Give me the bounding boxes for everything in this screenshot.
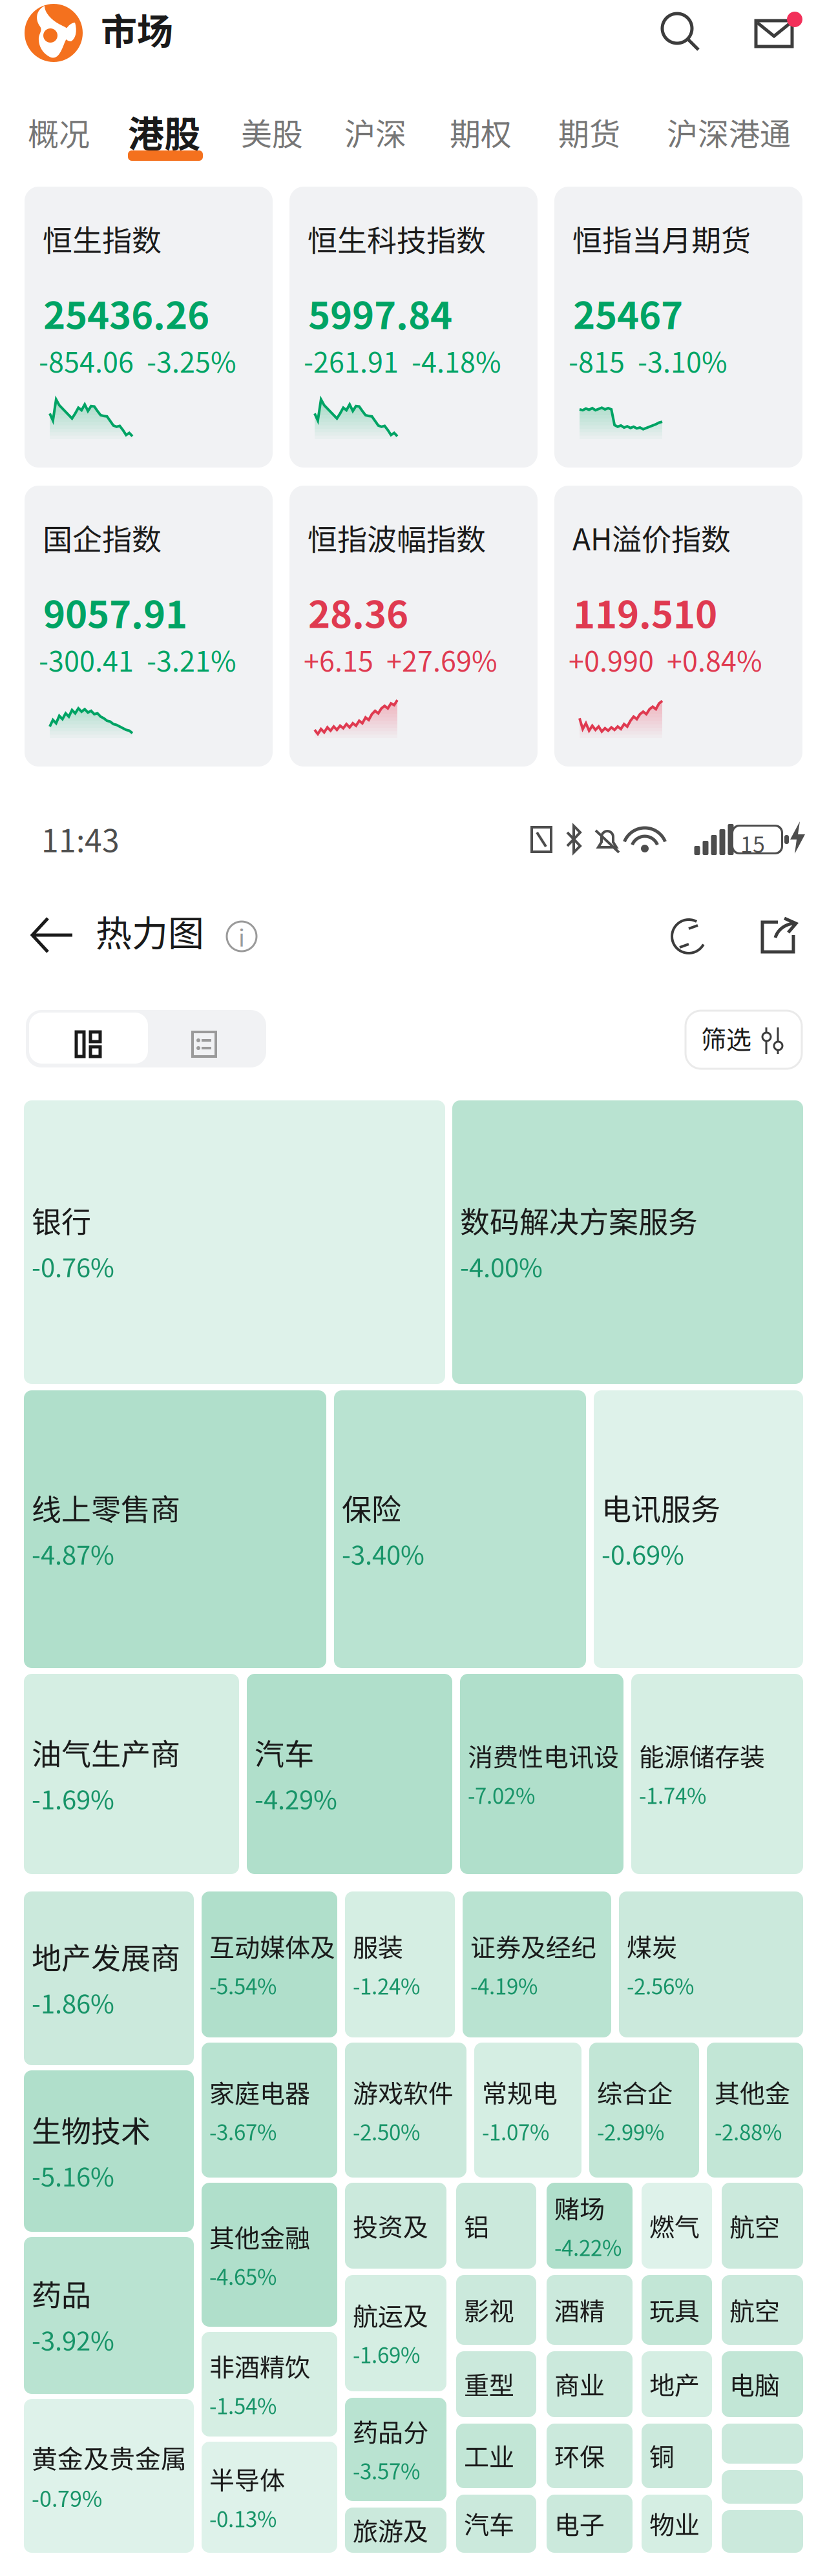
button[interactable]: 国企指数 [25,486,273,767]
staticText: 银行 [32,1199,91,1242]
button[interactable]: 非酒精饮 [202,2332,337,2437]
staticText: -0.13% [209,2503,277,2533]
staticText: -854.06 -3.25% [39,340,236,381]
staticText: 物业 [649,2505,700,2541]
button[interactable]: 服装 [345,1891,455,2037]
button[interactable]: 地产 [642,2351,712,2417]
button[interactable]: 煤炭 [619,1891,803,2037]
button[interactable]: 消费性电讯设 [460,1674,623,1874]
button[interactable]: 药品分 [345,2398,446,2501]
button[interactable]: 数码解决方案服务 [452,1100,803,1384]
button[interactable]: 燃气 [642,2183,712,2269]
button[interactable]: 航空 [722,2183,803,2269]
staticText: -1.74% [639,1779,706,1810]
button[interactable]: 生物技术 [24,2070,194,2232]
button[interactable]: 综合企 [589,2043,699,2178]
button[interactable]: Grid view [29,1013,148,1064]
button[interactable]: Messages [751,12,801,54]
staticText: 9057.91 [43,585,187,639]
button[interactable]: List view [149,1013,264,1064]
button[interactable]: 铜 [642,2424,712,2488]
staticText: 地产发展商 [32,1935,180,1978]
button[interactable]: 互动媒体及 [202,1891,337,2037]
button[interactable]: 玩具 [642,2275,712,2345]
button[interactable]: Search [660,12,703,54]
button[interactable]: Refresh [669,917,708,956]
button[interactable]: 其他金融 [202,2183,337,2327]
staticText: -3.57% [353,2455,420,2486]
button[interactable]: 恒指波幅指数 [289,486,538,767]
button[interactable]: Share [759,917,800,956]
staticText: 119.510 [573,585,717,639]
button[interactable]: 铝 [456,2183,536,2269]
button[interactable]: 美股 [232,98,316,169]
staticText: 地产 [649,2365,700,2402]
button[interactable]: 筛选 [686,1011,802,1069]
button[interactable]: Back [28,912,78,958]
button[interactable]: 航空 [722,2275,803,2345]
button[interactable]: 影视 [456,2275,536,2345]
staticText: -4.65% [209,2260,277,2291]
button[interactable]: 常规电 [474,2043,581,2178]
button[interactable]: 黄金及贵金属 [24,2399,194,2553]
button[interactable]: 地产发展商 [24,1891,194,2065]
button[interactable]: 能源储存装 [631,1674,803,1874]
button[interactable] [722,2424,803,2464]
button[interactable]: 期货 [549,98,633,169]
staticText: 汽车 [255,1731,314,1774]
button[interactable]: 赌场 [547,2183,633,2269]
button[interactable]: 线上零售商 [24,1390,326,1668]
button[interactable]: 期权 [441,98,525,169]
button[interactable]: 港股 [119,98,216,169]
button[interactable]: 其他金 [707,2043,803,2178]
button[interactable]: 汽车 [456,2495,536,2553]
button[interactable]: 商业 [547,2351,633,2417]
button[interactable]: 汽车 [247,1674,452,1874]
button[interactable]: 沪深港通 [658,98,810,169]
button[interactable]: 恒生指数 [25,187,273,468]
button[interactable]: 电子 [547,2495,633,2553]
staticText: 国企指数 [43,516,162,559]
button[interactable]: 航运及 [345,2275,446,2391]
staticText: -2.99% [597,2116,664,2147]
button[interactable] [722,2510,803,2553]
button[interactable]: 旅游及 [345,2508,446,2553]
staticText: -1.69% [32,1779,114,1817]
button[interactable]: AH溢价指数 [554,486,802,767]
staticText: 铜 [649,2437,675,2474]
staticText: 电讯服务 [602,1486,720,1529]
staticText: 互动媒体及 [209,1928,335,1964]
button[interactable] [722,2470,803,2504]
button[interactable]: 半导体 [202,2442,337,2553]
button[interactable]: 电讯服务 [594,1390,803,1668]
button[interactable]: 投资及 [345,2183,446,2269]
button[interactable]: 银行 [24,1100,445,1384]
button[interactable]: 家庭电器 [202,2043,337,2178]
button[interactable]: 证券及经纪 [463,1891,611,2037]
button[interactable]: 工业 [456,2424,536,2488]
staticText: 油气生产商 [32,1731,180,1774]
button[interactable]: 保险 [334,1390,586,1668]
button[interactable]: 环保 [547,2424,633,2488]
button[interactable]: 游戏软件 [345,2043,466,2178]
button[interactable]: 药品 [24,2237,194,2394]
button[interactable]: 油气生产商 [24,1674,239,1874]
staticText: 影视 [464,2291,514,2328]
staticText: 港股 [128,105,200,158]
button[interactable]: 重型 [456,2351,536,2417]
button[interactable]: 沪深 [335,98,419,169]
button[interactable]: 概况 [19,98,103,169]
button[interactable]: 电脑 [722,2351,803,2417]
staticText: 半导体 [209,2460,285,2497]
button[interactable]: 酒精 [547,2275,633,2345]
staticText: 28.36 [308,585,408,639]
staticText: 筛选 [701,1020,751,1056]
staticText: 旅游及 [353,2511,428,2548]
staticText: 保险 [342,1486,401,1529]
button[interactable]: 恒指当月期货 [554,187,802,468]
button[interactable]: 恒生科技指数 [289,187,538,468]
staticText: 能源储存装 [639,1737,765,1774]
button[interactable]: Info [225,920,258,953]
button[interactable]: 物业 [642,2495,712,2553]
staticText: 其他金 [715,2074,790,2110]
